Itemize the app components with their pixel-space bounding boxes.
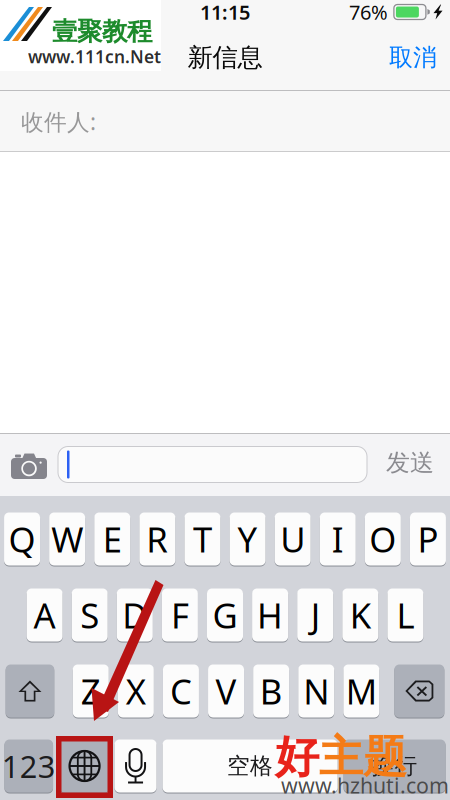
button[interactable]: Y [230,512,266,566]
button[interactable]: H [252,588,288,642]
button[interactable]: E [94,512,130,566]
button[interactable]: X [118,664,154,718]
button[interactable]: R [139,512,175,566]
button[interactable]: J [297,588,333,642]
button[interactable]: T [184,512,220,566]
staticText: B [260,668,283,714]
staticText: W [51,516,83,562]
staticText: P [417,516,438,562]
staticText: 壹聚教程 [52,16,152,47]
staticText: K [350,592,371,638]
staticText: 76% [349,0,388,25]
button[interactable]: W [49,512,85,566]
staticText: C [170,668,192,714]
button[interactable]: M [343,664,379,718]
staticText: 好 [275,730,319,784]
staticText: N [303,668,329,714]
staticText: H [257,592,283,638]
button[interactable]: D [117,588,153,642]
staticText: 取消 [389,43,437,72]
staticText: G [212,592,237,638]
button[interactable]: S [72,588,108,642]
button[interactable]: 发送 [377,439,443,486]
button[interactable]: K [342,588,378,642]
staticText: A [34,592,56,638]
staticText: Q [9,516,36,562]
staticText: 发送 [386,448,434,477]
staticText: www.111cn.Net [28,45,161,68]
staticText: www.hzhuti.com [281,771,449,799]
staticText: Z [81,668,101,714]
staticText: 空格 [227,752,273,780]
button[interactable]: P [410,512,446,566]
staticText: R [146,516,168,562]
staticText: O [369,516,396,562]
button[interactable]: Shift [6,664,54,718]
staticText: 收件人: [21,106,96,136]
button[interactable]: Dictation [114,739,156,793]
button[interactable]: Camera [11,452,47,479]
staticText: J [311,592,320,638]
button[interactable]: C [163,664,199,718]
staticText: I [332,516,344,562]
staticText: X [126,668,146,714]
button[interactable]: Q [4,512,40,566]
staticText: S [80,592,99,638]
staticText: Y [238,516,258,562]
staticText: 新信息 [187,42,262,73]
button[interactable]: A [27,588,63,642]
staticText: F [171,592,189,638]
staticText: 11:15 [200,0,250,25]
button[interactable]: L [387,588,423,642]
staticText: 换行 [372,752,418,780]
button[interactable]: Delete [394,664,444,718]
staticText: D [122,592,147,638]
button[interactable]: 取消 [376,31,450,84]
button[interactable]: 123 [4,739,53,793]
button[interactable]: V [208,664,244,718]
button[interactable]: I [320,512,356,566]
button[interactable]: 空格 [162,739,337,793]
button[interactable]: U [275,512,311,566]
staticText: T [193,516,212,562]
staticText: E [103,516,122,562]
staticText: M [346,668,377,714]
button[interactable]: N [298,664,334,718]
button[interactable]: Z [73,664,109,718]
button[interactable]: F [162,588,198,642]
staticText: 主题 [319,730,407,784]
button[interactable]: Switch keyboard [59,739,109,793]
button[interactable]: O [365,512,401,566]
button[interactable]: G [207,588,243,642]
button[interactable]: 换行 [344,739,446,793]
staticText: 123 [2,746,56,786]
button[interactable]: B [253,664,289,718]
staticText: U [280,516,305,562]
staticText: L [396,592,414,638]
staticText: V [215,668,236,714]
